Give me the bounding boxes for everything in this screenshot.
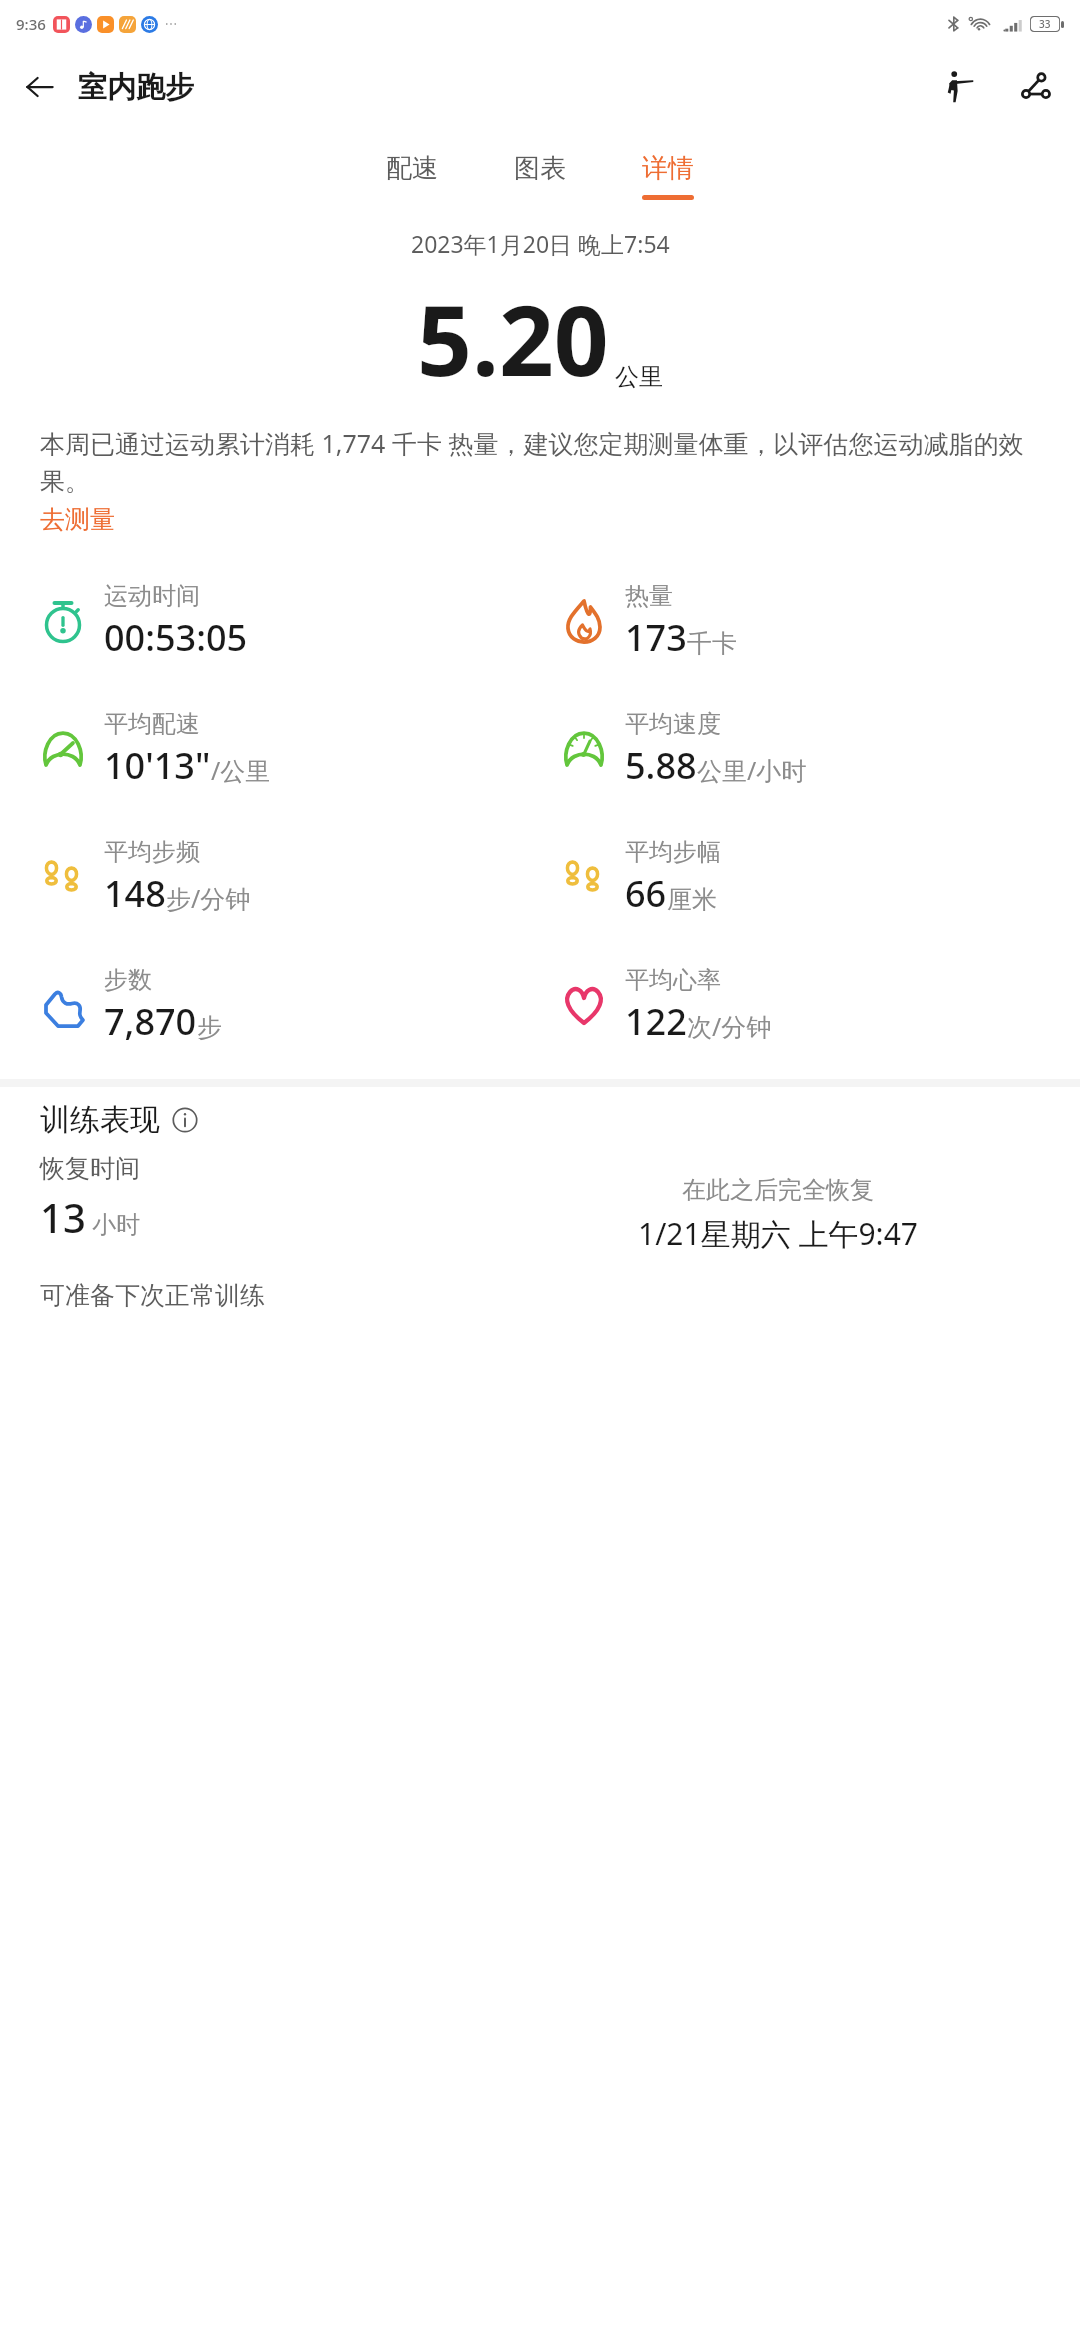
staticText: 次/分钟	[687, 1009, 772, 1043]
staticText: 2023年1月20日 晚上7:54	[411, 228, 670, 259]
staticText: 千卡	[687, 628, 737, 659]
button[interactable]: 平均心率	[559, 941, 772, 1069]
staticText: 13	[40, 1190, 86, 1244]
button[interactable]: 详情	[632, 148, 704, 204]
staticText: 在此之后完全恢复	[682, 1175, 874, 1205]
staticText: 122	[625, 997, 687, 1046]
staticText: 平均步频	[104, 837, 200, 867]
staticText: 33	[1039, 17, 1051, 31]
staticText: 5.20	[417, 273, 609, 404]
staticText: 10'13"	[104, 741, 211, 790]
staticText: 步/分钟	[166, 881, 251, 915]
staticText: 步	[197, 1012, 222, 1043]
button[interactable]: 返回	[12, 59, 68, 115]
button[interactable]: 训练表现	[40, 1101, 200, 1139]
button[interactable]: 平均步幅	[559, 813, 721, 941]
button[interactable]: 运动姿态	[932, 60, 986, 114]
button[interactable]: 图表	[504, 148, 576, 204]
button[interactable]: 平均配速	[38, 685, 271, 813]
staticText: 平均配速	[104, 709, 200, 739]
staticText: 公里/小时	[697, 753, 807, 787]
staticText: 5.88	[625, 741, 697, 790]
button[interactable]: 平均速度	[559, 685, 807, 813]
staticText: 热量	[625, 581, 673, 611]
staticText: 00:53:05	[104, 613, 248, 662]
button[interactable]: 热量	[559, 557, 737, 685]
staticText: 厘米	[667, 884, 717, 915]
button[interactable]: 运动时间	[38, 557, 248, 685]
staticText: 去测量	[40, 504, 115, 535]
staticText: 本周已通过运动累计消耗 1,774 千卡 热量，建议您定期测量体重，以评估您运动…	[40, 426, 1040, 498]
staticText: /公里	[211, 753, 271, 787]
staticText: 173	[625, 613, 687, 662]
staticText: 7,870	[104, 997, 197, 1046]
staticText: 恢复时间	[40, 1153, 140, 1184]
button[interactable]: 平均步频	[38, 813, 251, 941]
staticText: 平均速度	[625, 709, 721, 739]
staticText: 室内跑步	[78, 69, 194, 106]
staticText: 1/21星期六 上午9:47	[638, 1213, 918, 1254]
staticText: 148	[104, 869, 166, 918]
button[interactable]: 去测量	[40, 504, 115, 535]
staticText: 9:36	[16, 14, 46, 34]
button[interactable]: 分享	[1008, 60, 1062, 114]
staticText: 配速	[386, 152, 438, 185]
button[interactable]: 步数	[38, 941, 222, 1069]
staticText: 训练表现	[40, 1101, 160, 1139]
staticText: 运动时间	[104, 581, 200, 611]
other: 说明	[170, 1105, 200, 1135]
button[interactable]: 配速	[376, 148, 448, 204]
staticText: 平均心率	[625, 965, 721, 995]
staticText: 图表	[514, 152, 566, 185]
staticText: 公里	[615, 362, 663, 392]
staticText: 66	[625, 869, 667, 918]
staticText: 小时	[92, 1210, 140, 1240]
staticText: 平均步幅	[625, 837, 721, 867]
staticText: 详情	[642, 152, 694, 185]
staticText: 步数	[104, 965, 152, 995]
staticText: 可准备下次正常训练	[40, 1280, 265, 1311]
